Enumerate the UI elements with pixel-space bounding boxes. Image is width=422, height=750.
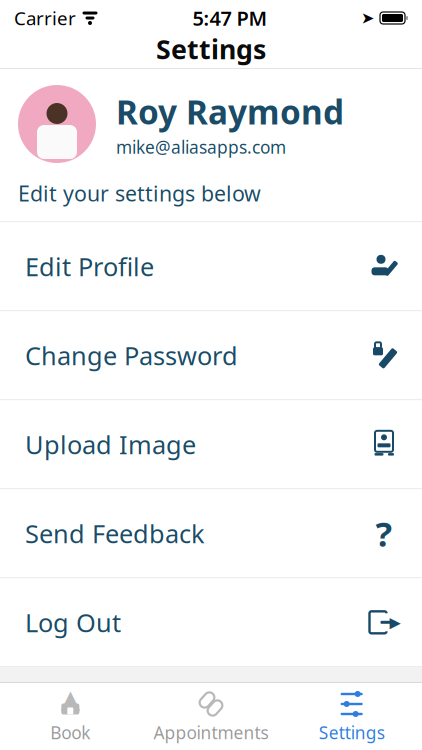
staticText: Appointments <box>153 721 268 744</box>
button[interactable]: Change Password <box>0 311 422 400</box>
staticText: mike@aliasapps.com <box>116 136 286 159</box>
staticText: Roy Raymond <box>116 89 344 134</box>
button[interactable]: Upload Image <box>0 400 422 489</box>
button[interactable]: Edit Profile <box>0 222 422 311</box>
button[interactable]: Appointments <box>141 683 281 750</box>
staticText: ▲ <box>61 685 80 713</box>
button[interactable]: Log Out <box>0 578 422 667</box>
staticText: Send Feedback <box>25 516 205 550</box>
staticText: Edit Profile <box>25 249 154 283</box>
staticText: ▶ <box>389 614 400 631</box>
staticText: Upload Image <box>25 427 196 461</box>
staticText: ? <box>375 510 392 556</box>
staticText: Edit your settings below <box>18 179 261 207</box>
staticText: Book <box>50 721 90 744</box>
staticText: Change Password <box>25 338 238 372</box>
staticText: Carrier <box>14 6 76 30</box>
button[interactable]: Send Feedback <box>0 489 422 578</box>
staticText: Settings <box>156 31 266 67</box>
staticText: 5:47 PM <box>192 5 267 31</box>
button[interactable]: Settings <box>281 683 422 750</box>
button[interactable]: ▲ <box>0 683 141 750</box>
staticText: Log Out <box>25 605 121 639</box>
staticText: ➤ <box>361 9 374 27</box>
staticText: Settings <box>319 721 385 744</box>
